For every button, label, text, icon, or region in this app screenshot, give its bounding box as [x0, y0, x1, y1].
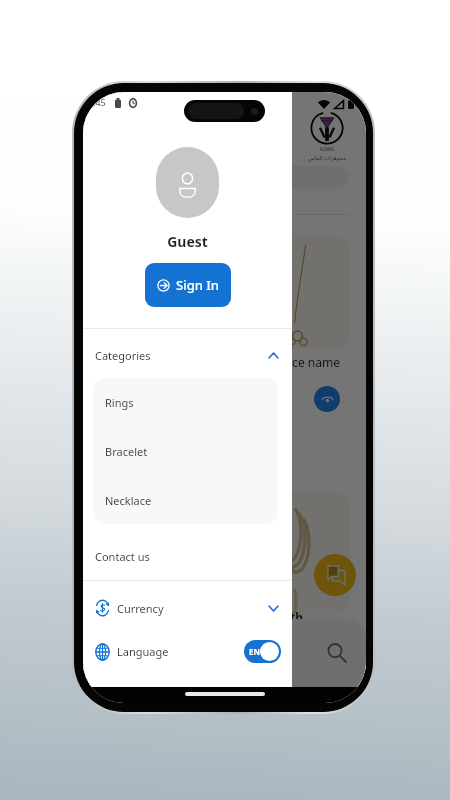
staticText: Categories	[95, 348, 151, 363]
button[interactable]: Currency	[83, 584, 292, 632]
staticText: Piece name	[275, 354, 340, 370]
staticText: :45	[93, 96, 106, 108]
button[interactable]: View piece	[314, 386, 340, 412]
button[interactable]: Categories	[83, 343, 292, 367]
button[interactable]: Bracelet	[93, 427, 278, 476]
staticText: Rings	[105, 395, 134, 410]
staticText: Language	[117, 644, 169, 659]
other: Collapse categories	[268, 352, 279, 359]
button[interactable]: Contact us	[83, 542, 292, 571]
staticText: Necklace	[105, 493, 152, 508]
other: Expand currency	[268, 605, 279, 612]
staticText: Sign In	[176, 276, 220, 294]
staticText: Bracelet	[105, 444, 148, 459]
staticText: Contact us	[95, 549, 150, 564]
button[interactable]: EN	[244, 640, 281, 663]
staticText: Currency	[117, 601, 164, 616]
staticText: ALMAS	[309, 146, 345, 152]
button[interactable]: Language	[83, 628, 292, 675]
staticText: EN	[249, 646, 260, 657]
staticText: Guest	[167, 232, 208, 251]
button[interactable]: Necklace	[93, 476, 278, 524]
button[interactable]: Sign In	[145, 263, 231, 307]
button[interactable]: Rings	[93, 378, 278, 427]
staticText: Gold Bracelet with	[193, 609, 304, 625]
staticText: مجوهرات الماس	[305, 154, 349, 161]
button[interactable]: Chat	[314, 554, 356, 596]
other: Search	[327, 643, 347, 663]
